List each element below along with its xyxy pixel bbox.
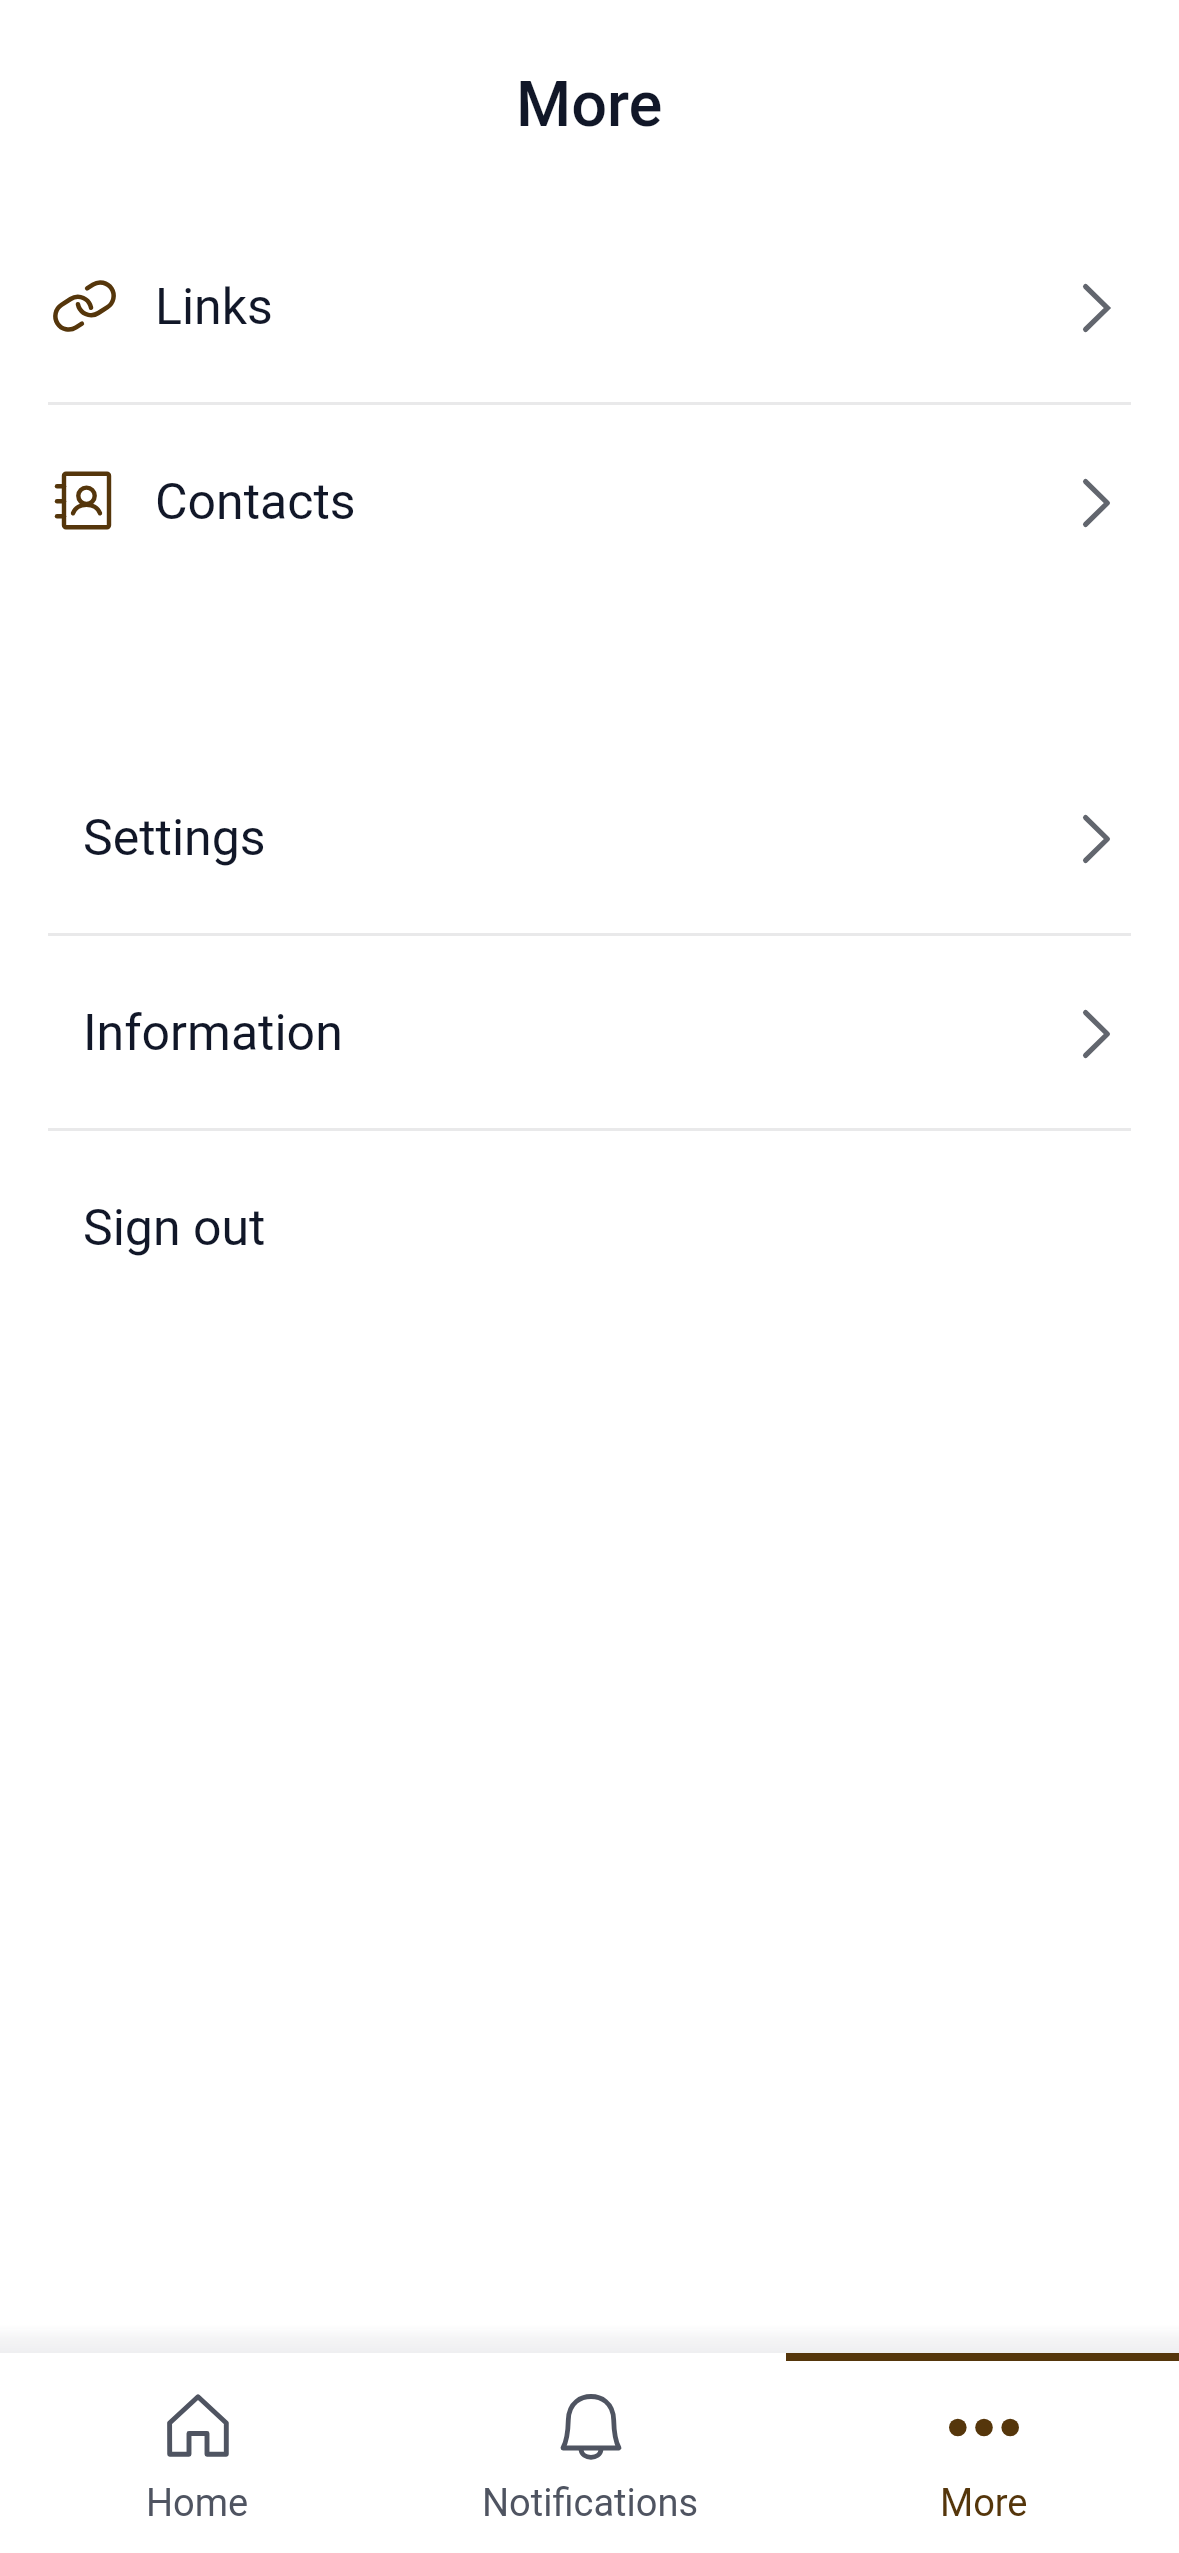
button[interactable]: Notifications	[393, 2353, 786, 2553]
staticText: More	[516, 68, 663, 142]
button[interactable]: More	[786, 2353, 1179, 2553]
staticText: Links	[155, 278, 273, 337]
staticText: More	[940, 2481, 1028, 2526]
button[interactable]: Sign out	[0, 1131, 1179, 1326]
other: Notifications	[560, 2391, 622, 2459]
staticText: Sign out	[83, 1199, 266, 1258]
button[interactable]: Contacts	[0, 405, 1179, 600]
staticText: Contacts	[155, 473, 356, 532]
staticText: Settings	[83, 809, 266, 868]
other: Home	[167, 2394, 229, 2457]
button[interactable]: Home	[0, 2353, 393, 2553]
other: More	[949, 2415, 1019, 2435]
staticText: Notifications	[482, 2481, 699, 2526]
button[interactable]: Information	[0, 936, 1179, 1131]
staticText: Home	[146, 2481, 249, 2526]
button[interactable]: Links	[0, 210, 1179, 405]
button[interactable]: Settings	[0, 741, 1179, 936]
staticText: Information	[83, 1004, 343, 1063]
